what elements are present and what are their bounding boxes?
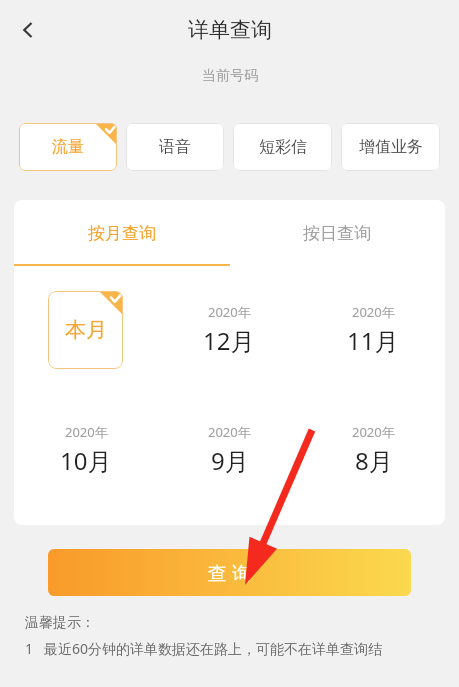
staticText: 10月 [60, 444, 112, 477]
button[interactable]: 按日查询 [229, 200, 445, 266]
button[interactable]: 2020年 [157, 400, 301, 500]
staticText: 按日查询 [303, 223, 371, 244]
staticText: 12月 [203, 324, 255, 357]
button[interactable]: 短彩信 [233, 123, 332, 171]
staticText: 11月 [347, 324, 399, 357]
staticText: 流量 [52, 137, 84, 157]
button[interactable]: 本月 [48, 291, 123, 369]
staticText: 1 最近60分钟的详单数据还在路上，可能不在详单查询结 [25, 639, 382, 658]
staticText: 2020年 [65, 423, 108, 441]
button[interactable]: 按月查询 [14, 200, 229, 266]
button[interactable]: 语音 [126, 123, 224, 171]
staticText: 本月 [65, 317, 107, 343]
button[interactable]: Back [6, 8, 50, 52]
button[interactable]: 2020年 [301, 280, 445, 380]
button[interactable]: 2020年 [157, 280, 301, 380]
button[interactable]: 2020年 [301, 400, 445, 500]
staticText: 2020年 [352, 303, 395, 321]
staticText: 语音 [159, 137, 191, 157]
staticText: 当前号码 [202, 67, 258, 85]
button[interactable]: 2020年 [14, 400, 157, 500]
staticText: 按月查询 [88, 223, 156, 244]
button[interactable]: 流量 [19, 123, 117, 171]
staticText: 2020年 [208, 303, 251, 321]
staticText: 8月 [355, 444, 393, 477]
button[interactable]: 查 询 [48, 549, 411, 596]
staticText: 2020年 [352, 423, 395, 441]
staticText: 2020年 [208, 423, 251, 441]
staticText: 9月 [211, 444, 249, 477]
staticText: 短彩信 [259, 137, 307, 157]
staticText: 温馨提示： [25, 614, 95, 632]
staticText: 查 询 [208, 560, 251, 586]
button[interactable]: 增值业务 [341, 123, 440, 171]
staticText: 详单查询 [188, 17, 272, 43]
staticText: 增值业务 [359, 137, 423, 157]
